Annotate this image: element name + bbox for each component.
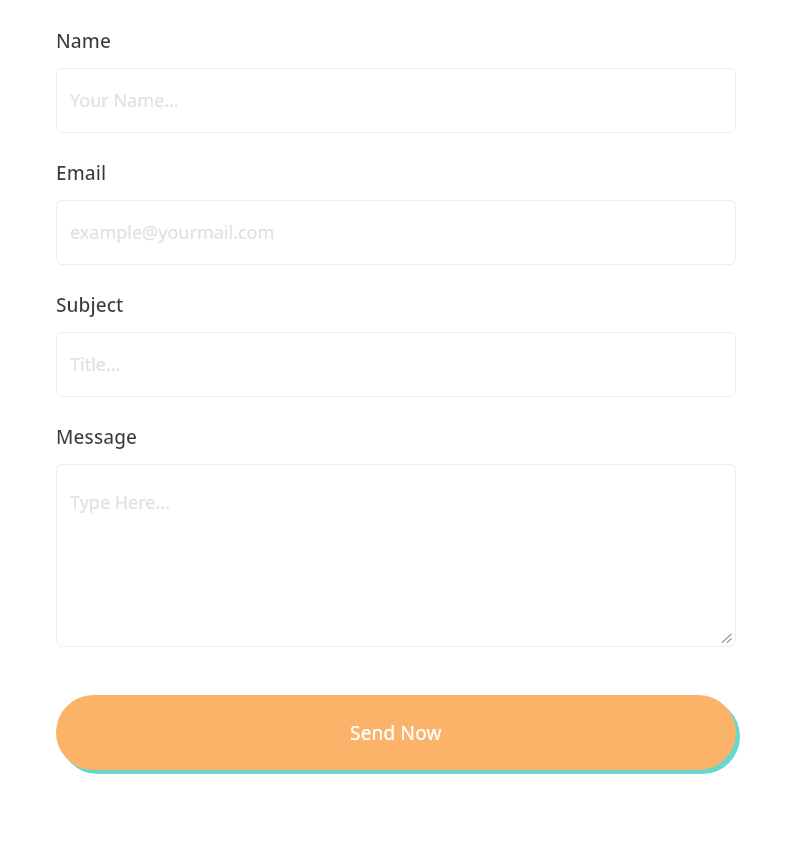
staticText: Send Now	[350, 720, 442, 746]
staticText: Type Here...	[70, 490, 170, 515]
staticText: example@yourmail.com	[70, 220, 275, 245]
button[interactable]: Your Name...	[56, 68, 736, 133]
staticText: Title...	[70, 352, 121, 377]
staticText: Subject	[56, 292, 124, 318]
staticText: Email	[56, 160, 107, 186]
staticText: Name	[56, 28, 111, 54]
staticText: Message	[56, 424, 138, 450]
staticText: Your Name...	[70, 88, 179, 113]
button[interactable]: example@yourmail.com	[56, 200, 736, 265]
button[interactable]: Title...	[56, 332, 736, 397]
button[interactable]: Send Now	[56, 695, 736, 774]
